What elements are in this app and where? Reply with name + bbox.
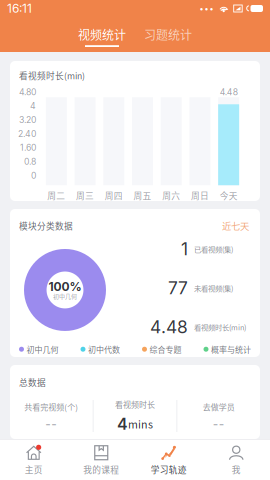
- staticText: 周六: [162, 189, 180, 202]
- staticText: •••: [199, 4, 214, 13]
- staticText: --: [213, 417, 225, 431]
- staticText: 0: [31, 170, 36, 181]
- staticText: 4.80: [19, 87, 36, 97]
- staticText: 2.40: [18, 128, 36, 139]
- staticText: 我的课程: [83, 463, 119, 476]
- staticText: 3.20: [19, 115, 36, 125]
- staticText: mins: [128, 416, 153, 431]
- staticText: 0.8: [24, 156, 36, 167]
- staticText: 100%: [48, 279, 81, 294]
- staticText: 1: [181, 238, 188, 259]
- staticText: 4: [30, 101, 36, 111]
- staticText: 初中代数: [88, 343, 120, 355]
- staticText: 学习轨迹: [151, 463, 187, 476]
- staticText: 初中几何: [26, 343, 58, 355]
- staticText: 周五: [133, 189, 151, 202]
- staticText: 1.60: [20, 142, 36, 153]
- button[interactable]: 视频统计: [77, 26, 127, 47]
- button[interactable]: 我的课程: [67, 439, 135, 480]
- button[interactable]: 主页: [0, 439, 67, 480]
- staticText: 未看视频(集): [194, 283, 233, 293]
- staticText: 周二: [47, 189, 65, 202]
- staticText: 4.48: [150, 316, 188, 337]
- staticText: 看视频时长(min): [194, 322, 246, 332]
- staticText: 共看完视频(个): [24, 401, 78, 413]
- staticText: 视频统计: [78, 26, 126, 43]
- staticText: 模块分类数据: [19, 219, 73, 232]
- staticText: 近七天: [222, 219, 249, 232]
- staticText: 周四: [105, 189, 123, 202]
- staticText: 4.48: [220, 87, 238, 97]
- staticText: 已看视频(集): [194, 244, 233, 254]
- staticText: 4: [117, 414, 128, 433]
- staticText: 主页: [25, 463, 43, 476]
- staticText: 初中几何: [53, 292, 77, 301]
- staticText: 周日: [191, 189, 209, 202]
- staticText: 习题统计: [144, 26, 192, 43]
- button[interactable]: 习题统计: [143, 26, 193, 47]
- staticText: 总数据: [19, 376, 46, 388]
- staticText: 今天: [220, 189, 238, 202]
- button[interactable]: 近七天: [222, 219, 251, 232]
- staticText: 我: [232, 463, 241, 476]
- staticText: 77: [168, 277, 188, 298]
- staticText: 综合专题: [149, 343, 181, 355]
- button[interactable]: 我: [202, 439, 270, 480]
- staticText: 概率与统计: [211, 343, 251, 355]
- staticText: --: [45, 417, 57, 431]
- staticText: 16:11: [7, 1, 32, 16]
- staticText: 看视频时长: [115, 398, 155, 410]
- staticText: 周三: [76, 189, 94, 202]
- staticText: 看视频时长(min): [19, 69, 85, 82]
- staticText: 去做学员: [203, 401, 235, 413]
- button[interactable]: 学习轨迹: [135, 439, 202, 480]
